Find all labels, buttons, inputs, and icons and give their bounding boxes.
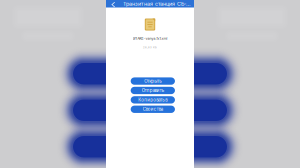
staticText: SHAKE-vanya.fx1.xml [132, 36, 167, 41]
staticText: Открыть [144, 78, 161, 84]
button[interactable]: Свойства [131, 106, 175, 113]
staticText: Свойства [143, 107, 163, 112]
staticText: Отправить [142, 88, 164, 93]
button[interactable]: Открыть [131, 77, 175, 85]
staticText: 26,63 КБ [143, 46, 157, 49]
button[interactable]: Копировать в [131, 96, 175, 103]
staticText: Копировать в [138, 97, 167, 102]
button[interactable]: Отправить [131, 87, 175, 94]
staticText: Транзитная станция СБ-ф… [123, 0, 193, 7]
button[interactable]: Назад [108, 0, 117, 7]
